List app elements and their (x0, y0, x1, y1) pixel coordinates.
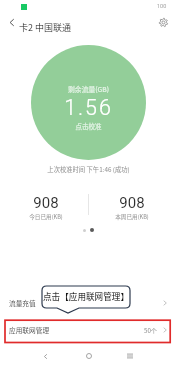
staticText: 流量充值 (9, 298, 36, 308)
staticText: 点击校准 (31, 121, 146, 130)
staticText: 100 (157, 3, 167, 9)
button[interactable]: Home (79, 346, 99, 366)
button[interactable]: Back (0, 11, 22, 33)
button[interactable]: Back (35, 346, 55, 366)
staticText: 应用联网管理 (9, 325, 50, 335)
staticText: 今日已用(KB) (2, 213, 90, 221)
button[interactable]: 剩余流量(GB) (31, 45, 146, 160)
button[interactable]: Recent apps (120, 346, 140, 366)
staticText: 1.56 (31, 95, 146, 120)
button[interactable]: 流量充值 (0, 292, 177, 314)
staticText: 908 (2, 194, 90, 212)
staticText: 卡2 中国联通 (19, 21, 72, 34)
staticText: 剩余流量(GB) (31, 84, 146, 94)
staticText: 50个 (144, 326, 158, 335)
button[interactable]: 908 (2, 194, 90, 222)
button[interactable]: Settings (152, 11, 174, 33)
staticText: 点击【应用联网管理】 (42, 290, 130, 302)
staticText: 本周已用(KB) (88, 213, 176, 221)
button[interactable]: 应用联网管理 (0, 319, 177, 341)
staticText: 上次校准时间 下午1:46 (成功) (0, 165, 177, 174)
button[interactable]: 908 (88, 194, 176, 222)
staticText: 908 (88, 194, 176, 212)
